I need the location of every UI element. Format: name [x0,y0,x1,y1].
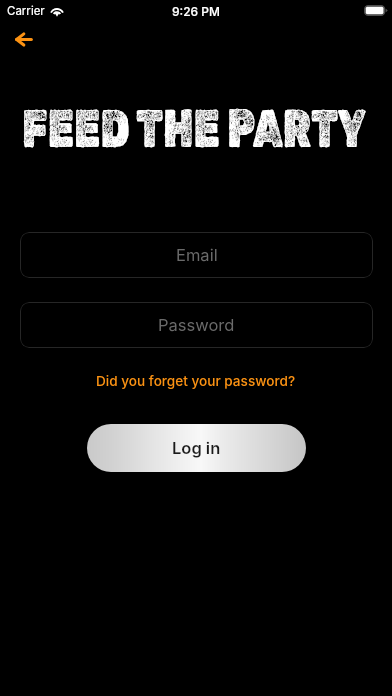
staticText: Password [158,315,235,335]
staticText: Did you forget your password? [96,373,296,389]
button[interactable]: Did you forget your password? [90,371,302,391]
button[interactable]: Email [20,232,373,278]
staticText: Carrier [7,4,45,18]
button[interactable]: Back [5,23,43,57]
button[interactable]: Password [20,302,373,348]
staticText: Email [176,245,218,265]
button[interactable]: Log in [87,424,306,472]
staticText: Log in [172,438,221,458]
staticText: 9:26 PM [172,4,220,19]
staticText: FEED THE PARTY [15,98,373,160]
